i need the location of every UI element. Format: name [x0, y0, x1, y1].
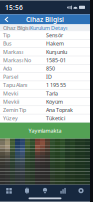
button[interactable]: Mevkii: [0, 98, 90, 106]
staticText: Ana Toprak: [46, 106, 73, 113]
staticText: Ada: [3, 65, 12, 72]
staticText: Zemin Tip: [3, 106, 26, 113]
staticText: Tapu Alanı: [3, 81, 27, 89]
staticText: Mevki: [3, 90, 18, 97]
button[interactable]: Ayarlar: [72, 185, 90, 197]
staticText: 1585-01: [46, 57, 66, 64]
button[interactable]: Kurulum Detayı: [30, 24, 67, 31]
button[interactable]: Cihazlar: [18, 185, 36, 197]
staticText: Tarla: [46, 90, 58, 97]
button[interactable]: Tip: [0, 31, 90, 40]
button[interactable]: Ada: [0, 65, 90, 73]
staticText: Kurşunlu: [46, 48, 67, 55]
staticText: Bus: [3, 40, 12, 47]
button[interactable]: Panel: [0, 185, 18, 197]
button[interactable]: Yayınlamakta: [0, 123, 90, 139]
staticText: Sensör: [46, 32, 63, 39]
staticText: Tip: [3, 32, 10, 39]
button[interactable]: Yüzey: [0, 114, 90, 123]
staticText: ID: [46, 73, 52, 80]
staticText: Markası: [3, 48, 23, 55]
staticText: Yüzey: [3, 115, 18, 122]
button[interactable]: Back: [2, 15, 11, 24]
staticText: Köyüm: [46, 98, 63, 105]
staticText: Cihaz Bilgisi: [3, 24, 30, 31]
staticText: Tüketici: [46, 115, 65, 122]
staticText: Parsel: [3, 73, 18, 80]
button[interactable]: Markası No: [0, 56, 90, 65]
staticText: 15:56: [5, 3, 23, 12]
staticText: Hakem: [46, 40, 64, 47]
staticText: Markası No: [3, 57, 31, 64]
staticText: Yayınlamakta: [28, 127, 61, 134]
staticText: 850: [46, 65, 55, 72]
button[interactable]: Mevki: [0, 89, 90, 98]
button[interactable]: Zemin Tip: [0, 106, 90, 114]
button[interactable]: Bus: [0, 40, 90, 48]
staticText: 1 195 55: [46, 81, 66, 89]
button[interactable]: Raporlar: [54, 185, 72, 197]
button[interactable]: Parsel: [0, 73, 90, 81]
button[interactable]: Harita: [36, 185, 54, 197]
staticText: Cihaz Bilgisi: [26, 15, 64, 24]
button[interactable]: Tapu Alanı: [0, 81, 90, 89]
button[interactable]: Markası: [0, 48, 90, 56]
staticText: Mevkii: [3, 98, 19, 105]
staticText: Kurulum Detayı: [30, 24, 67, 31]
